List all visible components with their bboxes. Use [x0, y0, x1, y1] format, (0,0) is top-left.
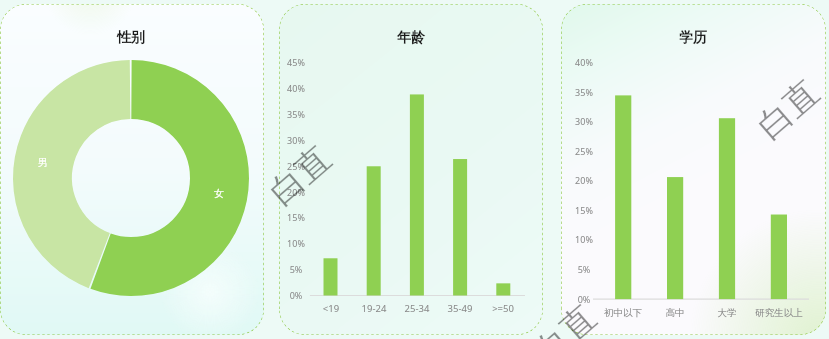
staticText: 25%	[561, 145, 684, 157]
staticText: 高中	[575, 307, 775, 319]
staticText: 白直	[509, 282, 621, 339]
staticText: 性别	[31, 29, 231, 47]
staticText: 女	[119, 187, 264, 200]
staticText: >=50	[403, 302, 543, 315]
staticText: 大学	[627, 307, 826, 319]
staticText: 20%	[561, 174, 684, 186]
staticText: 5%	[561, 263, 684, 275]
staticText: 初中以下	[561, 307, 723, 319]
staticText: 25-34	[317, 302, 517, 315]
staticText: 白直	[732, 57, 829, 162]
staticText: 30%	[279, 134, 396, 146]
button[interactable]: 性别	[0, 4, 264, 335]
staticText: 15%	[279, 211, 396, 223]
staticText: 25%	[279, 160, 396, 172]
staticText: 白直	[244, 123, 356, 228]
staticText: 20%	[279, 186, 396, 198]
staticText: 35%	[561, 86, 684, 98]
staticText: 40%	[561, 56, 684, 68]
staticText: 35-49	[360, 302, 543, 315]
staticText: 10%	[279, 237, 396, 249]
button[interactable]: 年龄	[279, 4, 543, 335]
button[interactable]: 学历	[561, 4, 826, 335]
staticText: 0%	[279, 289, 396, 301]
staticText: 30%	[561, 115, 684, 127]
staticText: <19	[279, 302, 431, 315]
staticText: 15%	[561, 204, 684, 216]
staticText: 5%	[279, 263, 396, 275]
staticText: 学历	[593, 29, 793, 47]
staticText: 10%	[561, 233, 684, 245]
staticText: 40%	[279, 82, 396, 94]
staticText: 19-24	[279, 302, 474, 315]
staticText: 0%	[561, 293, 684, 305]
staticText: 男	[0, 156, 143, 169]
staticText: 45%	[279, 56, 396, 68]
staticText: 研究生以上	[679, 307, 826, 319]
staticText: 35%	[279, 108, 396, 120]
staticText: 年龄	[311, 29, 511, 47]
